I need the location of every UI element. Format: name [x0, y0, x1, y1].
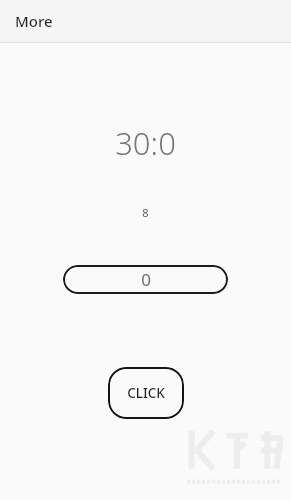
staticText: 30:0	[115, 122, 176, 164]
staticText: 8	[142, 205, 149, 220]
staticText: CLICK	[127, 384, 165, 402]
button[interactable]: CLICK	[108, 367, 184, 419]
staticText: More	[15, 11, 53, 31]
other: watermark	[185, 424, 289, 496]
button[interactable]: 0	[63, 265, 228, 294]
staticText: 0	[141, 268, 151, 291]
